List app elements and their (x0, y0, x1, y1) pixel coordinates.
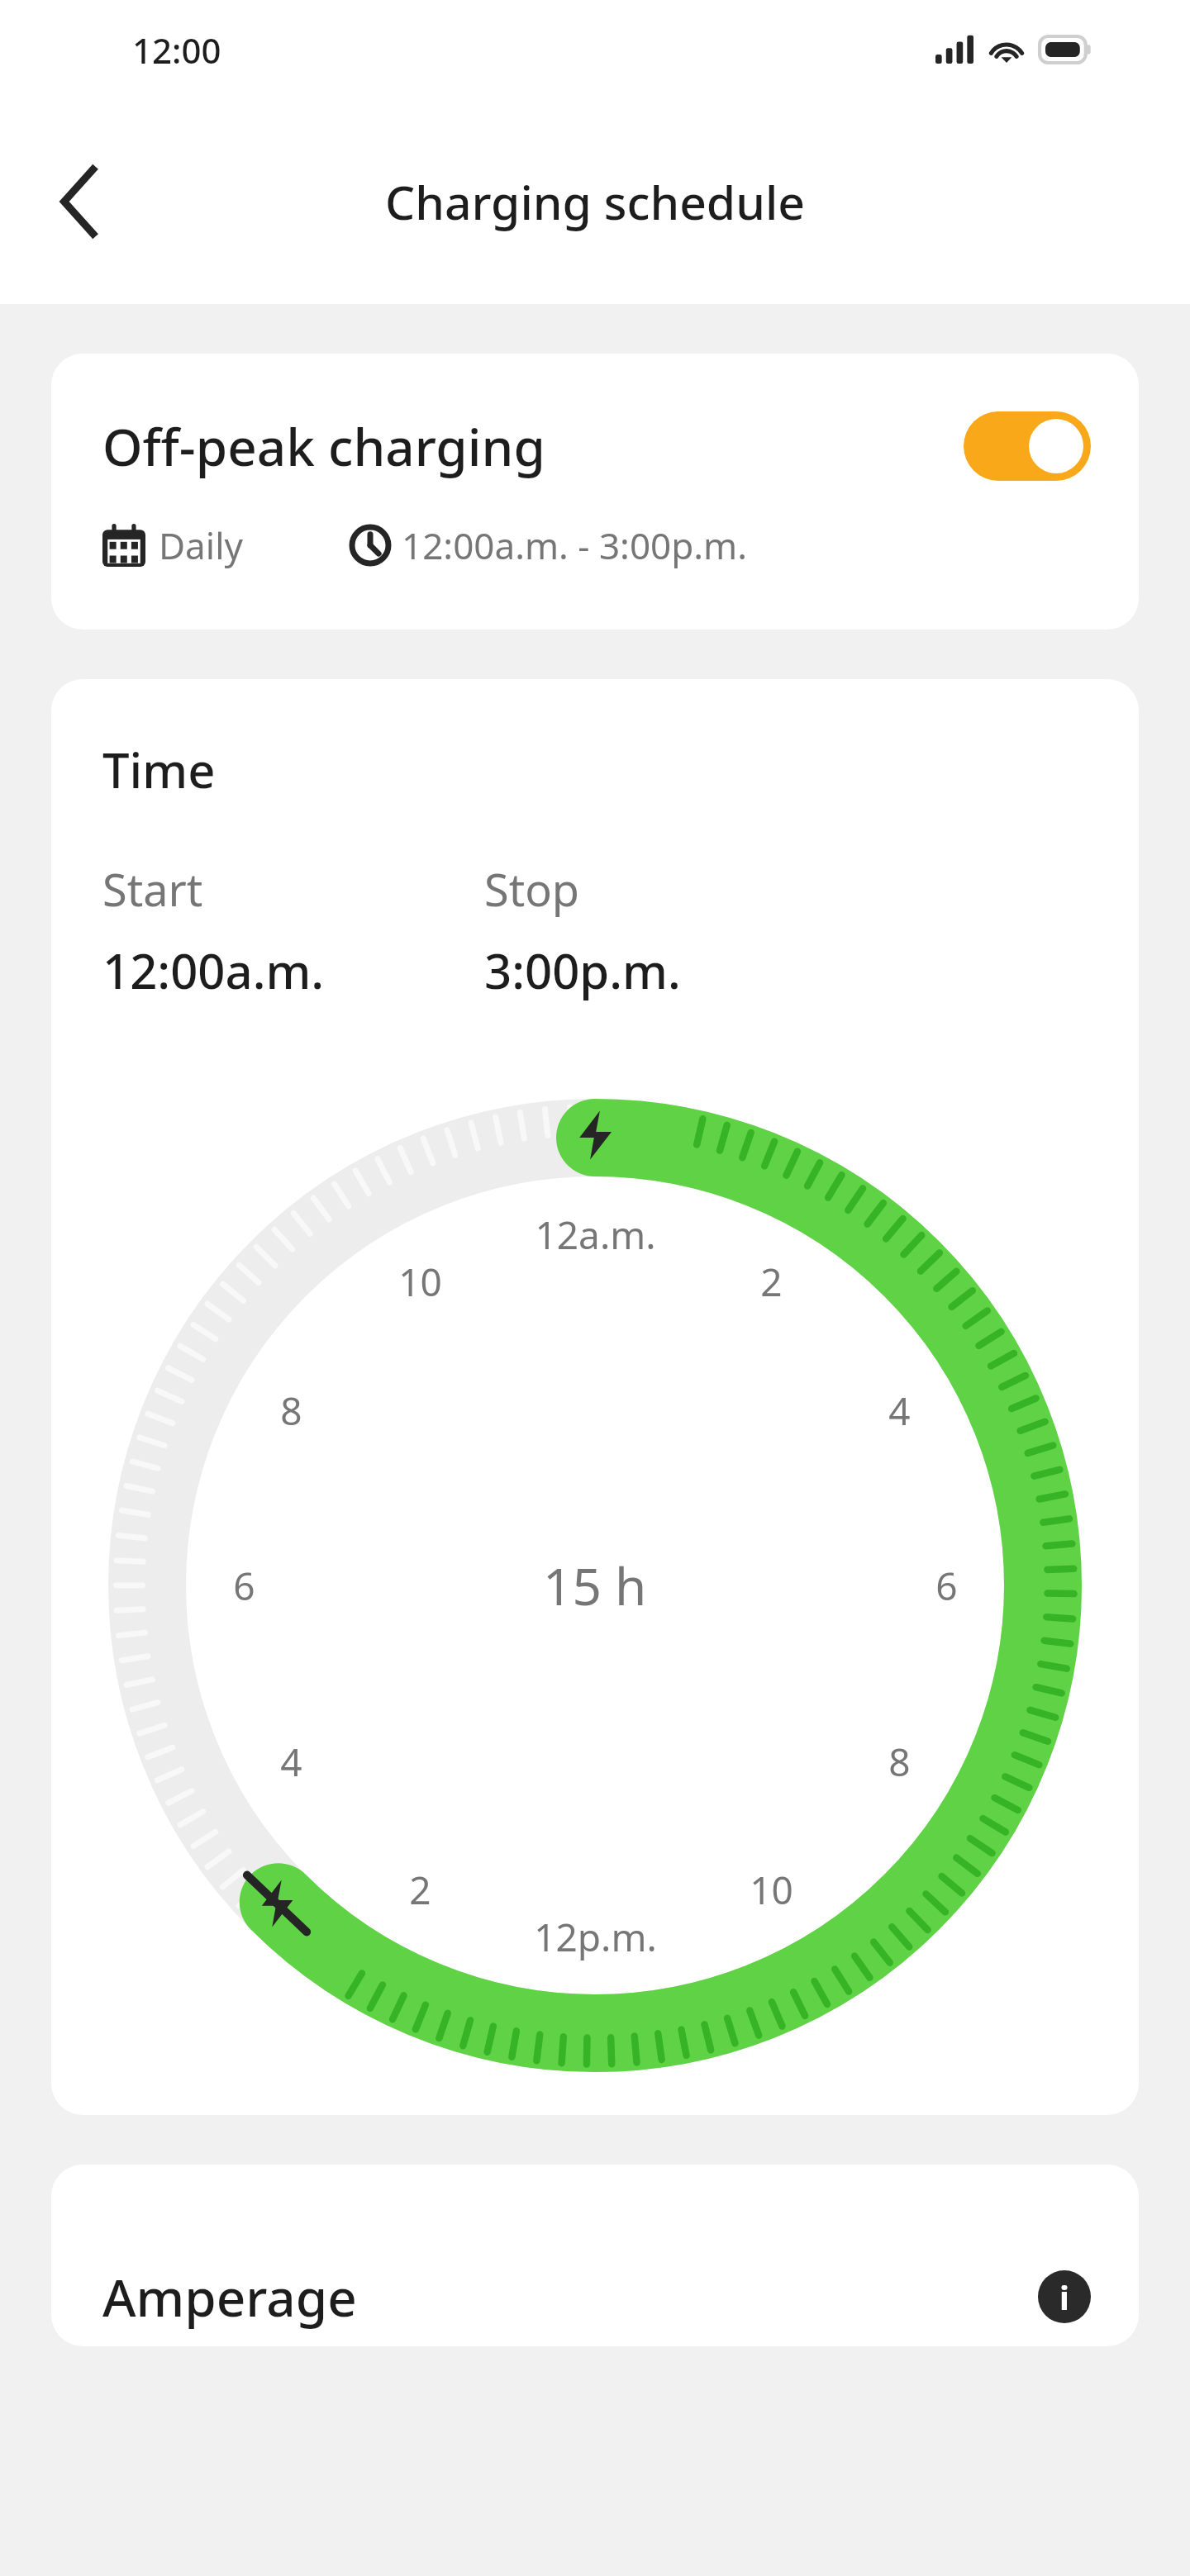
staticText: Start (102, 858, 203, 920)
staticText: 8 (888, 1736, 911, 1788)
button[interactable]: Amperage info (1038, 2270, 1091, 2323)
button[interactable]: Off-peak charging toggle (964, 411, 1091, 481)
staticText: Daily (159, 520, 243, 570)
staticText: 2 (409, 1864, 431, 1916)
staticText: Off-peak charging (102, 411, 964, 481)
button[interactable]: Start (102, 858, 484, 1003)
staticText: Charging schedule (385, 169, 806, 234)
button[interactable]: Charging time range dial (106, 1096, 1084, 2075)
staticText: i (1059, 2274, 1069, 2319)
button[interactable]: Amperage (51, 2165, 1139, 2346)
button[interactable]: Back (30, 152, 129, 251)
staticText: 2 (760, 1256, 783, 1308)
staticText: 10 (750, 1864, 793, 1916)
staticText: 4 (888, 1385, 911, 1437)
staticText: Stop (484, 858, 580, 920)
staticText: 12a.m. (535, 1209, 656, 1261)
staticText: 6 (935, 1560, 958, 1612)
staticText: Time (102, 737, 216, 802)
staticText: 12:00a.m. (102, 938, 325, 1003)
button[interactable]: Off-peak charging (51, 354, 1139, 630)
button[interactable]: Stop (484, 858, 681, 1003)
staticText: Amperage (102, 2262, 1038, 2331)
staticText: 12:00 (132, 26, 221, 74)
staticText: 10 (398, 1256, 442, 1308)
staticText: 3:00p.m. (484, 938, 681, 1003)
staticText: 6 (233, 1560, 255, 1612)
staticText: 4 (280, 1736, 302, 1788)
staticText: 8 (280, 1385, 302, 1437)
staticText: 12:00a.m. - 3:00p.m. (402, 520, 747, 570)
staticText: 15 h (543, 1551, 647, 1620)
staticText: 12p.m. (534, 1911, 657, 1963)
